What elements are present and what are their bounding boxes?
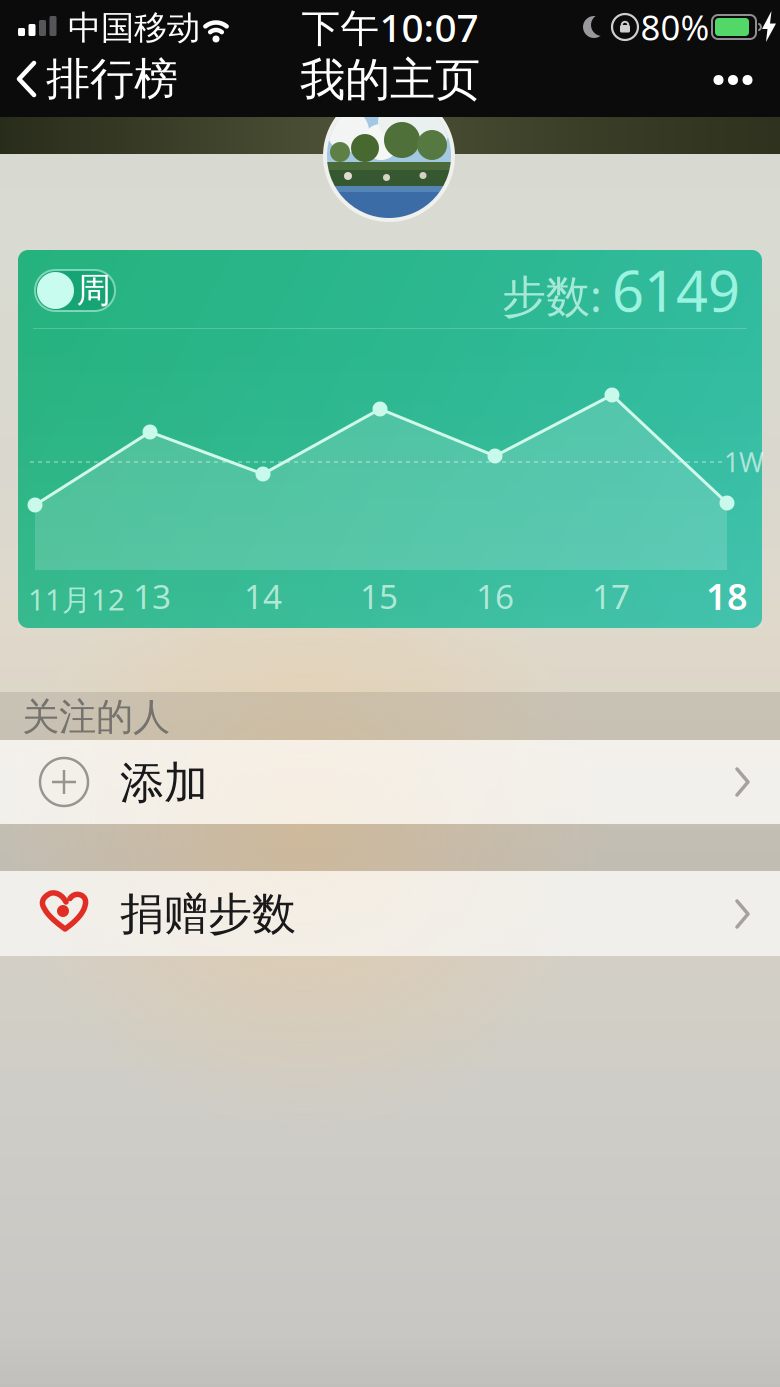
staticText: 中国移动 — [68, 7, 200, 48]
button[interactable]: 排行榜 — [0, 0, 780, 1387]
staticText: 1W — [724, 444, 764, 480]
staticText: 排行榜 — [46, 52, 178, 106]
staticText: 80% — [640, 4, 709, 50]
staticText: 15 — [360, 574, 398, 618]
staticText: 14 — [244, 574, 282, 618]
staticText: 步数: — [502, 266, 602, 324]
staticText: 关注的人 — [22, 694, 170, 740]
staticText: 添加 — [120, 756, 208, 810]
staticText: 16 — [476, 574, 514, 618]
staticText: 周 — [76, 269, 111, 312]
staticText: 下午10:07 — [301, 1, 478, 53]
button[interactable]: 捐赠步数 — [0, 871, 780, 956]
staticText: 13 — [133, 574, 171, 618]
staticText: 18 — [706, 572, 748, 620]
staticText: 17 — [592, 574, 630, 618]
button[interactable]: 添加 — [0, 740, 780, 824]
staticText: 11月12 — [28, 579, 125, 618]
staticText: 捐赠步数 — [120, 887, 296, 941]
staticText: 我的主页 — [300, 52, 480, 108]
button[interactable]: 更多 — [0, 0, 780, 1387]
staticText: 6149 — [612, 253, 740, 327]
button[interactable]: 周 — [35, 270, 115, 311]
